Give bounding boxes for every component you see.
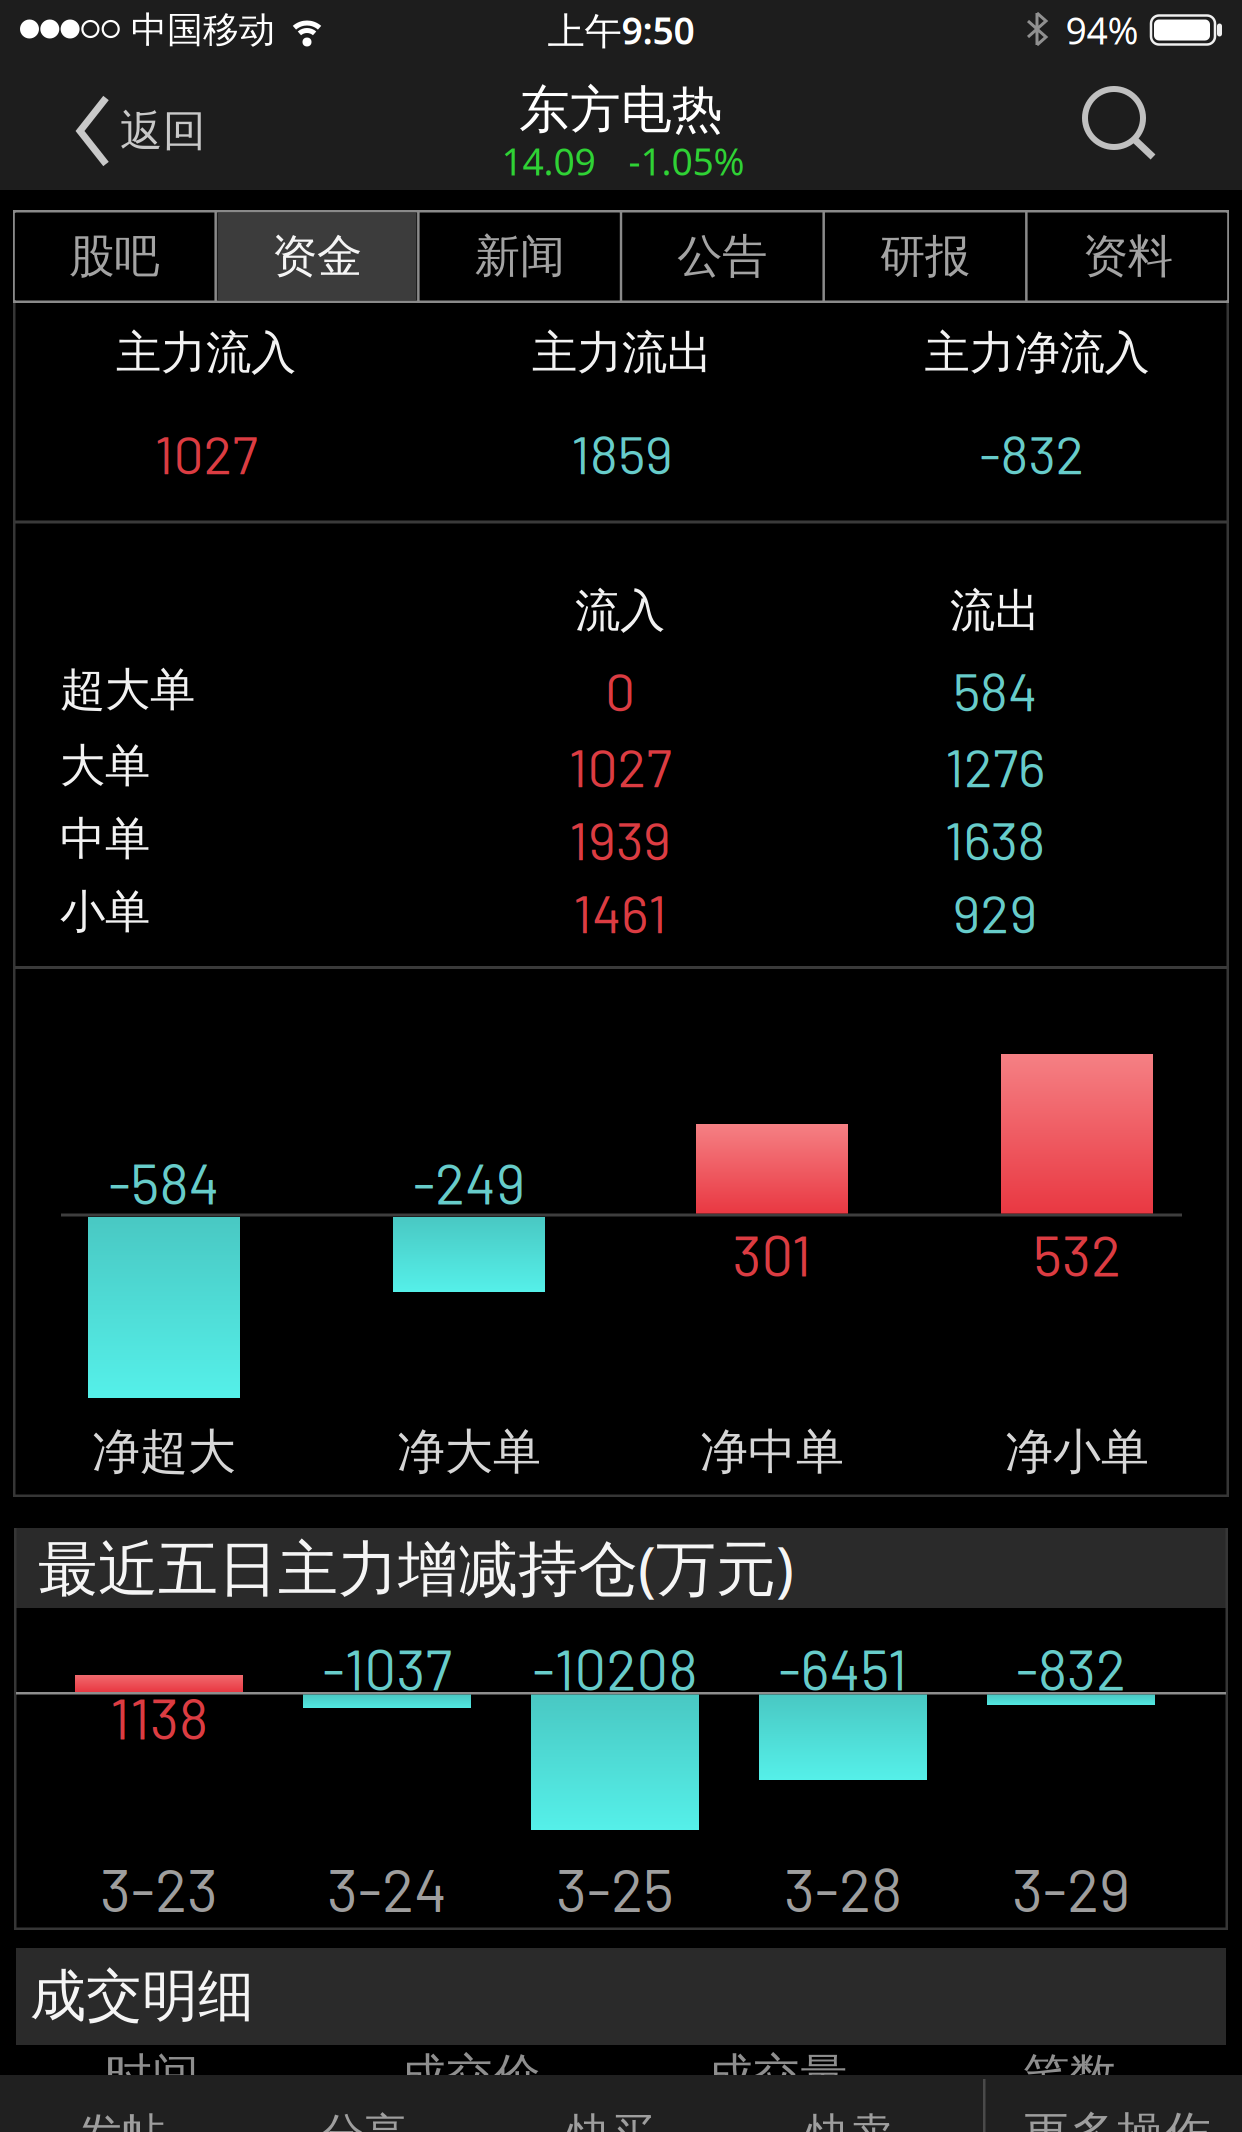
staticText: 301 [732,1220,811,1288]
staticText: 中国移动 [131,8,275,52]
staticText: 笔数 [1023,2047,1117,2105]
staticText: 1638 [944,807,1045,871]
staticText: -1037 [322,1634,451,1702]
staticText: 1138 [110,1683,208,1751]
button[interactable]: 发帖 [0,2104,262,2132]
staticText: 资金 [272,229,362,284]
staticText: 净超大 [92,1422,236,1481]
staticText: 流入 [575,583,665,639]
staticText: 1276 [945,734,1045,798]
staticText: 0 [605,658,635,722]
button[interactable]: 新闻 [420,213,619,300]
staticText: 929 [952,880,1037,944]
staticText: -1.05% [628,136,744,186]
staticText: 成交明细 [30,1962,254,2030]
staticText: 584 [953,658,1037,722]
button[interactable]: 快买 [471,2104,751,2132]
staticText: 新闻 [475,229,565,284]
button[interactable]: 快卖 [710,2104,990,2132]
staticText: 更多操作 [1023,2105,1211,2132]
button[interactable]: 资金 [217,213,416,300]
staticText: 中单 [60,811,150,867]
staticText: 大单 [60,738,150,794]
staticText: 资料 [1083,229,1173,284]
staticText: 1859 [571,421,673,485]
staticText: 公告 [677,229,767,284]
staticText: 1027 [568,734,671,798]
staticText: -249 [413,1148,525,1216]
staticText: 股吧 [69,229,159,284]
staticText: 成交价 [399,2047,540,2105]
staticText: 返回 [120,105,206,157]
staticText: 上午9:50 [547,5,694,55]
staticText: 成交量 [706,2047,847,2105]
button[interactable]: 分享 [224,2104,504,2132]
button[interactable]: 更多操作 [977,2104,1242,2132]
staticText: 3-28 [784,1852,902,1924]
staticText: 3-25 [556,1852,674,1924]
staticText: 小单 [60,884,150,940]
staticText: 最近五日主力增减持仓(万元) [38,1527,794,1607]
staticText: 分享 [321,2108,407,2132]
staticText: -6451 [778,1634,907,1702]
button[interactable]: 研报 [825,213,1024,300]
button[interactable]: 返回 [76,95,206,167]
button[interactable]: 搜索 [1075,83,1163,165]
staticText: -832 [1016,1634,1126,1702]
staticText: 快买 [568,2108,654,2132]
staticText: 主力净流入 [924,325,1149,381]
staticText: 研报 [880,229,970,284]
staticText: 净小单 [1005,1422,1149,1481]
staticText: 东方电热 [519,79,723,141]
staticText: 流出 [950,583,1040,639]
staticText: 时间 [105,2047,199,2105]
staticText: 超大单 [60,662,195,718]
staticText: 3-23 [100,1852,218,1924]
staticText: 3-29 [1012,1852,1130,1924]
staticText: 532 [1033,1220,1121,1288]
staticText: 1027 [154,421,257,485]
staticText: -832 [979,421,1084,485]
staticText: 净大单 [397,1422,541,1481]
staticText: -10208 [532,1634,697,1702]
staticText: 净中单 [700,1422,844,1481]
staticText: 主力流入 [116,325,296,381]
staticText: 1939 [569,807,671,871]
staticText: 发帖 [79,2108,165,2132]
staticText: 1461 [573,880,667,944]
button[interactable]: 股吧 [15,213,214,300]
staticText: 3-24 [327,1852,447,1924]
staticText: -584 [108,1148,219,1216]
staticText: 主力流出 [532,325,712,381]
button[interactable]: 公告 [623,213,822,300]
staticText: 94% [1065,5,1138,55]
button[interactable]: 资料 [1028,213,1227,300]
staticText: 14.09 [501,136,595,186]
staticText: 快卖 [807,2108,893,2132]
